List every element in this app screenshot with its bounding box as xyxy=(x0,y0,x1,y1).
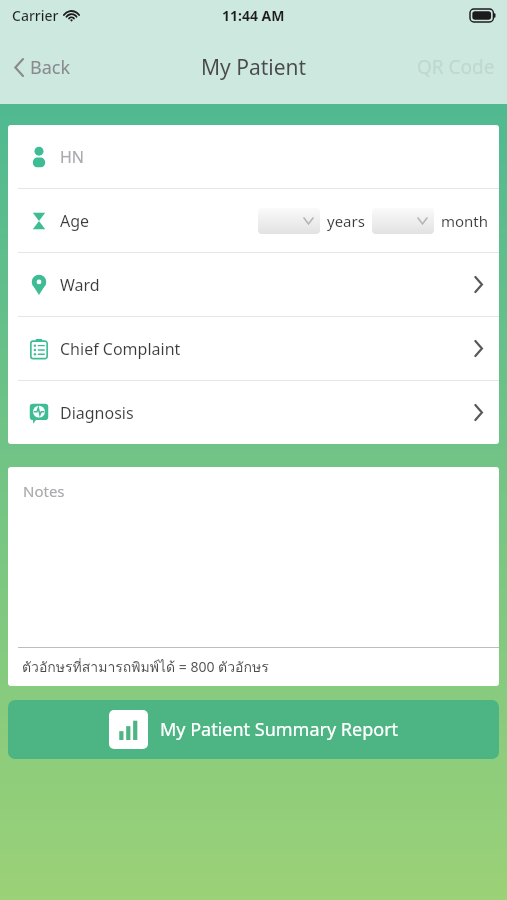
staticText: QR Code xyxy=(417,54,495,80)
staticText: 11:44 AM xyxy=(222,6,285,25)
button[interactable]: Notes xyxy=(8,467,499,647)
staticText: Back xyxy=(30,55,71,80)
staticText: Diagnosis xyxy=(60,402,134,424)
staticText: Notes xyxy=(23,481,65,501)
staticText: Chief Complaint xyxy=(60,338,181,360)
staticText: HN xyxy=(60,146,85,168)
button[interactable]: Ward xyxy=(8,253,499,316)
button[interactable]: QR Code xyxy=(405,44,507,90)
button[interactable]: Diagnosis xyxy=(8,381,499,444)
button[interactable]: My Patient Summary Report xyxy=(8,700,499,759)
staticText: years xyxy=(327,211,365,231)
button[interactable]: Select value xyxy=(258,208,320,234)
button[interactable]: Back xyxy=(0,45,85,90)
staticText: Ward xyxy=(60,274,100,296)
button[interactable]: Select value xyxy=(372,208,434,234)
button[interactable]: Chief Complaint xyxy=(8,317,499,380)
staticText: Age xyxy=(60,210,90,232)
button[interactable]: HN xyxy=(8,125,499,188)
staticText: ตัวอักษรที่สามารถพิมพ์ได้ = 800 ตัวอักษร xyxy=(22,656,269,678)
staticText: month xyxy=(441,211,489,231)
staticText: Carrier xyxy=(12,6,59,25)
staticText: My Patient Summary Report xyxy=(160,717,399,742)
staticText: My Patient xyxy=(201,53,307,82)
